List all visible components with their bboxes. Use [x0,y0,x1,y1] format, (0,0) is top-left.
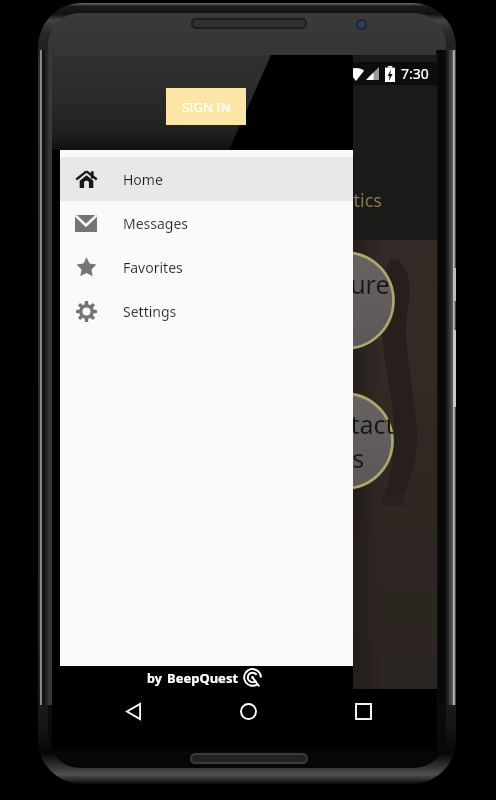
staticText: Home [123,170,163,189]
staticText: Analytics [307,188,382,213]
staticText: BeepQuest [167,669,239,687]
staticText: by [147,670,162,687]
staticText: Settings [123,302,177,321]
button[interactable]: Features [296,251,395,350]
button[interactable]: Recent apps [343,691,383,731]
button[interactable]: SIGN IN [166,88,246,125]
button[interactable]: Settings [60,289,353,333]
staticText: Messages [123,214,189,233]
staticText: Contact [304,407,394,441]
staticText: Features [300,267,395,335]
button[interactable]: Messages [60,201,353,245]
staticText: SIGN IN [182,98,231,116]
staticText: Favorites [123,258,183,277]
button[interactable]: Favorites [60,245,353,289]
button[interactable]: Back [113,691,153,731]
staticText: 7:30 [401,64,429,83]
button[interactable]: Contact [296,392,394,490]
button[interactable]: Home [228,691,268,731]
staticText: Us [334,441,365,475]
button[interactable]: Home [60,157,353,201]
